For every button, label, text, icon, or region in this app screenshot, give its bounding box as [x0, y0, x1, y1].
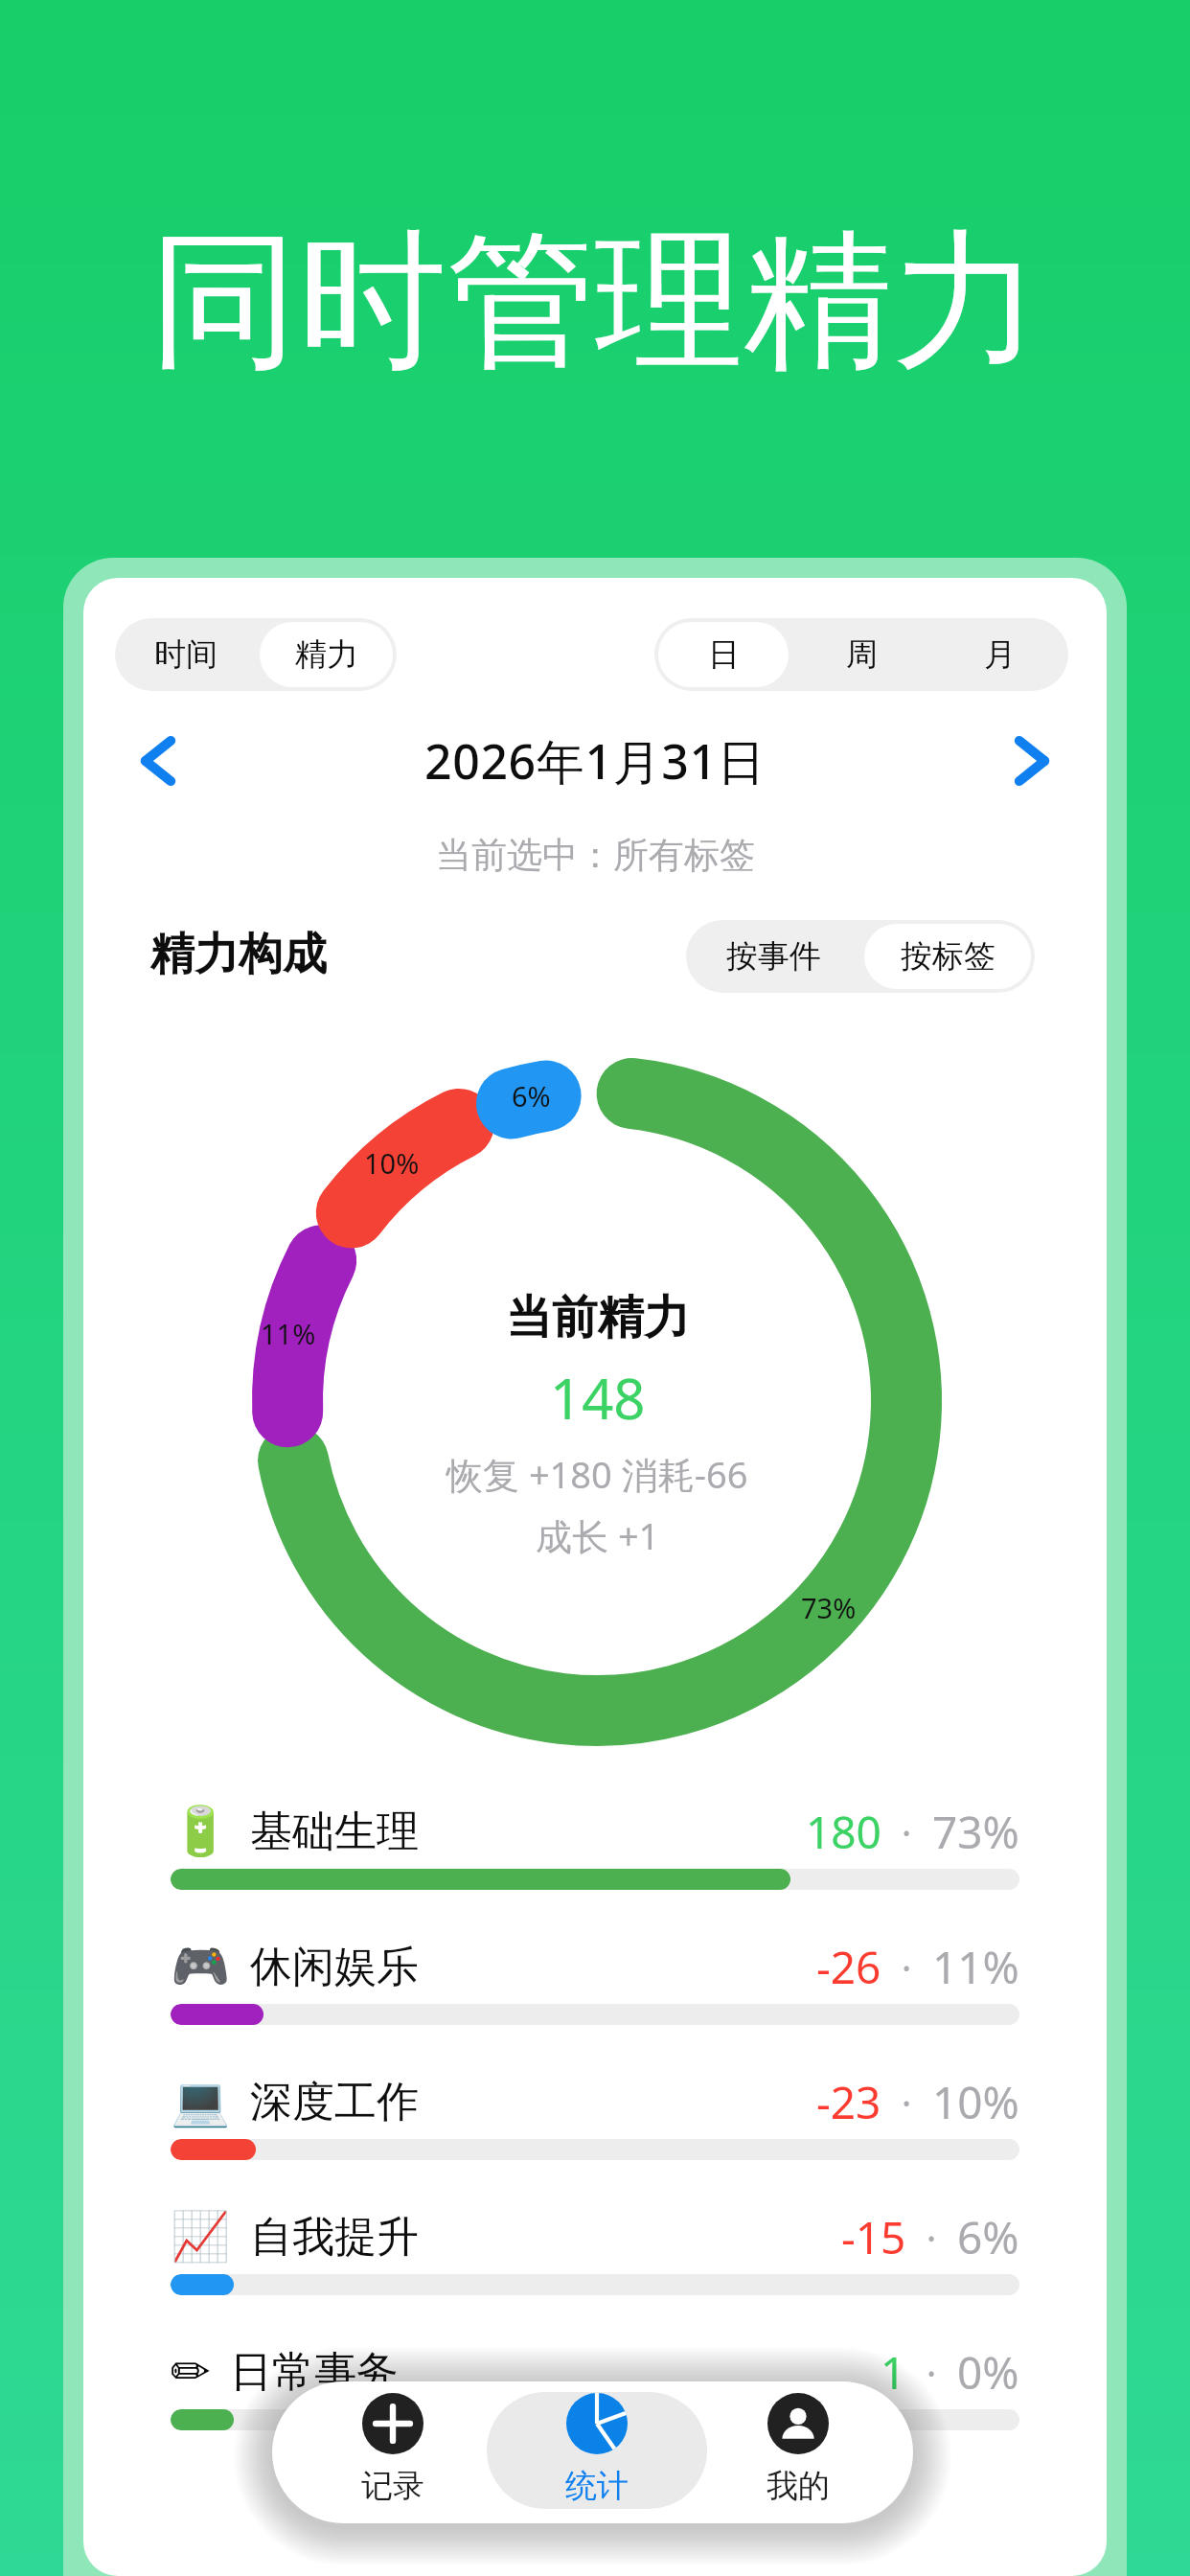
- other: Statistics: [566, 2393, 628, 2454]
- staticText: 日: [708, 634, 740, 675]
- other: Record: [362, 2393, 423, 2454]
- staticText: 时间: [154, 634, 217, 675]
- staticText: 2026年1月31日: [424, 728, 767, 793]
- staticText: 73%: [801, 1589, 857, 1626]
- staticText: 🎮: [171, 1939, 231, 1995]
- button[interactable]: 📈: [171, 2199, 1019, 2334]
- button[interactable]: 月: [934, 622, 1064, 687]
- staticText: 恢复 +180 消耗-66: [446, 1449, 748, 1499]
- staticText: -23: [816, 2072, 881, 2132]
- staticText: 按标签: [901, 936, 995, 977]
- staticText: 📈: [171, 2209, 231, 2265]
- staticText: 10%: [364, 1144, 420, 1182]
- staticText: 73%: [932, 1802, 1019, 1862]
- staticText: 0%: [957, 2342, 1019, 2403]
- staticText: 月: [984, 634, 1016, 675]
- staticText: 按事件: [726, 936, 821, 977]
- staticText: 自我提升: [250, 2211, 419, 2264]
- staticText: 基础生理: [250, 1805, 419, 1858]
- other: Profile: [767, 2393, 829, 2454]
- staticText: ·: [906, 2346, 957, 2398]
- button[interactable]: 周: [796, 622, 927, 687]
- staticText: 成长 +1: [536, 1510, 660, 1560]
- staticText: 180: [806, 1802, 881, 1862]
- staticText: 💻: [171, 2074, 231, 2130]
- staticText: 148: [550, 1360, 646, 1436]
- staticText: ·: [881, 1941, 932, 1992]
- button[interactable]: 日: [658, 622, 789, 687]
- staticText: ·: [881, 2076, 932, 2127]
- button[interactable]: Statistics: [501, 2392, 693, 2509]
- staticText: 🔋: [171, 1804, 231, 1860]
- staticText: 6%: [512, 1077, 551, 1115]
- button[interactable]: Record: [297, 2392, 489, 2509]
- staticText: 休闲娱乐: [250, 1941, 419, 1993]
- staticText: 日常事务: [230, 2346, 399, 2399]
- staticText: -26: [816, 1937, 881, 1997]
- staticText: -15: [841, 2207, 906, 2267]
- button[interactable]: 🔋: [171, 1794, 1019, 1929]
- staticText: 深度工作: [250, 2076, 419, 2128]
- staticText: 精力构成: [150, 927, 327, 982]
- staticText: 当前选中：所有标签: [436, 833, 755, 878]
- staticText: 1: [881, 2342, 906, 2403]
- staticText: 我的: [767, 2466, 830, 2506]
- button[interactable]: Previous day: [112, 715, 204, 807]
- button[interactable]: Profile: [702, 2392, 894, 2509]
- staticText: 11%: [261, 1315, 316, 1352]
- button[interactable]: 💻: [171, 2064, 1019, 2199]
- staticText: 10%: [932, 2072, 1019, 2132]
- button[interactable]: 精力: [260, 622, 393, 687]
- staticText: 6%: [957, 2207, 1019, 2267]
- staticText: 记录: [361, 2466, 424, 2506]
- staticText: 统计: [565, 2466, 629, 2506]
- staticText: 当前精力: [506, 1289, 690, 1346]
- button[interactable]: Next day: [986, 715, 1078, 807]
- button[interactable]: ✏️: [171, 2334, 1019, 2470]
- button[interactable]: 🎮: [171, 1929, 1019, 2064]
- staticText: 周: [846, 634, 878, 675]
- button[interactable]: 按事件: [690, 924, 857, 989]
- staticText: ·: [906, 2211, 957, 2263]
- staticText: 11%: [932, 1937, 1019, 1997]
- staticText: ·: [881, 1805, 932, 1857]
- button[interactable]: 时间: [119, 622, 252, 687]
- staticText: ✏️: [171, 2344, 211, 2400]
- staticText: 精力: [295, 634, 358, 675]
- staticText: 同时管理精力: [149, 209, 1041, 396]
- button[interactable]: 按标签: [864, 924, 1031, 989]
